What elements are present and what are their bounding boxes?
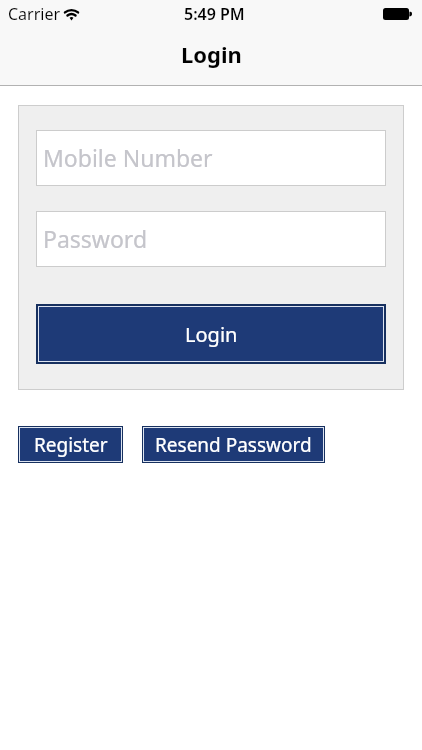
staticText: 5:49 PM	[184, 3, 245, 25]
staticText: Register	[34, 432, 108, 458]
button[interactable]: Resend Password	[143, 427, 324, 462]
button[interactable]: Login	[38, 306, 384, 362]
staticText: Login	[181, 39, 242, 69]
staticText: Password	[43, 223, 148, 254]
staticText: Login	[185, 321, 238, 348]
staticText: Carrier	[8, 3, 61, 25]
staticText: Mobile Number	[43, 142, 213, 173]
staticText: Resend Password	[155, 432, 312, 458]
button[interactable]: Password	[36, 211, 386, 267]
button[interactable]: Mobile Number	[36, 130, 386, 186]
button[interactable]: Register	[19, 427, 122, 462]
